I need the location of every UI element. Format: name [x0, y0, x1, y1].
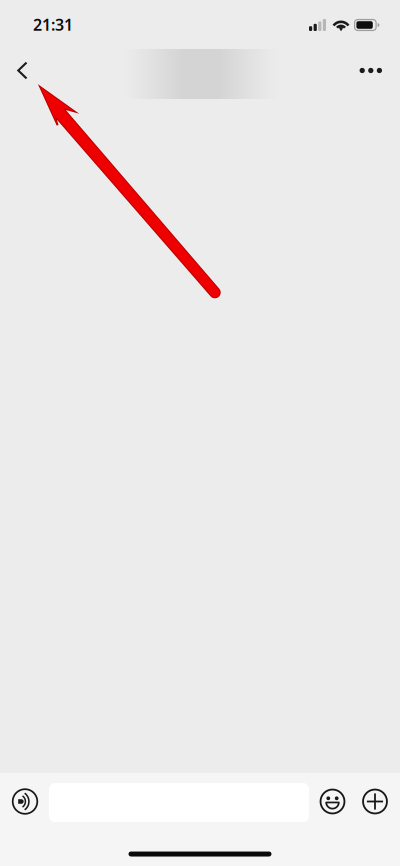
button[interactable]: More	[349, 49, 393, 93]
button[interactable]: Emoji	[311, 781, 353, 821]
button[interactable]: Hold to talk	[4, 781, 46, 821]
button[interactable]: Back	[0, 48, 44, 92]
button[interactable]: More options	[354, 781, 396, 821]
staticText: 21:31	[33, 14, 73, 35]
